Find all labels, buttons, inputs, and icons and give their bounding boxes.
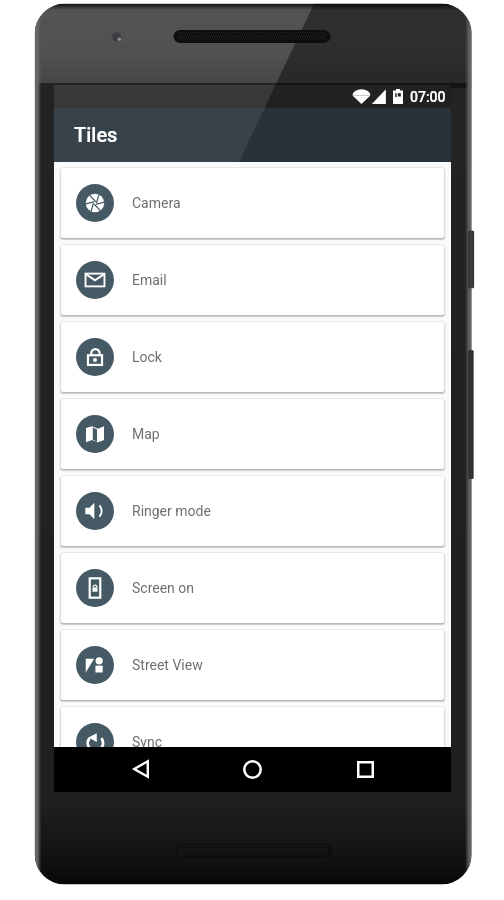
button[interactable]: Email [61,245,444,315]
staticText: Lock [132,349,162,365]
staticText: Street View [132,657,203,673]
staticText: 07:00 [410,89,446,105]
staticText: Email [132,272,167,288]
button[interactable]: Recent apps [345,749,385,789]
staticText: Map [132,426,160,442]
button[interactable]: Home [232,749,272,789]
staticText: Sync [132,734,162,750]
button[interactable]: Sync [61,707,444,777]
button[interactable]: Screen on [61,553,444,623]
button[interactable]: Back [121,749,161,789]
staticText: Tiles [74,123,118,146]
staticText: Screen on [132,580,195,596]
button[interactable]: Lock [61,322,444,392]
staticText: Camera [132,195,181,211]
button[interactable]: Camera [61,168,444,238]
button[interactable]: Map [61,399,444,469]
button[interactable]: Ringer mode [61,476,444,546]
button[interactable]: Street View [61,630,444,700]
staticText: Ringer mode [132,503,211,519]
